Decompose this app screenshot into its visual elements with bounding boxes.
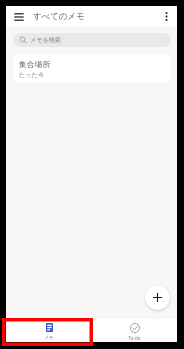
button[interactable]: 集合場所: [13, 54, 171, 83]
button[interactable]: More options: [157, 6, 175, 27]
button[interactable]: Create note: [145, 285, 170, 310]
button[interactable]: To-do: [91, 319, 177, 342]
staticText: メモ: [44, 334, 54, 340]
staticText: たった今: [19, 71, 45, 79]
button[interactable]: メモ: [6, 319, 91, 342]
button[interactable]: メモを検索: [13, 33, 171, 47]
staticText: すべてのメモ: [33, 11, 85, 22]
button[interactable]: Menu: [9, 6, 29, 27]
staticText: メモを検索: [30, 36, 61, 44]
staticText: 集合場所: [19, 59, 51, 69]
staticText: To-do: [128, 335, 141, 341]
